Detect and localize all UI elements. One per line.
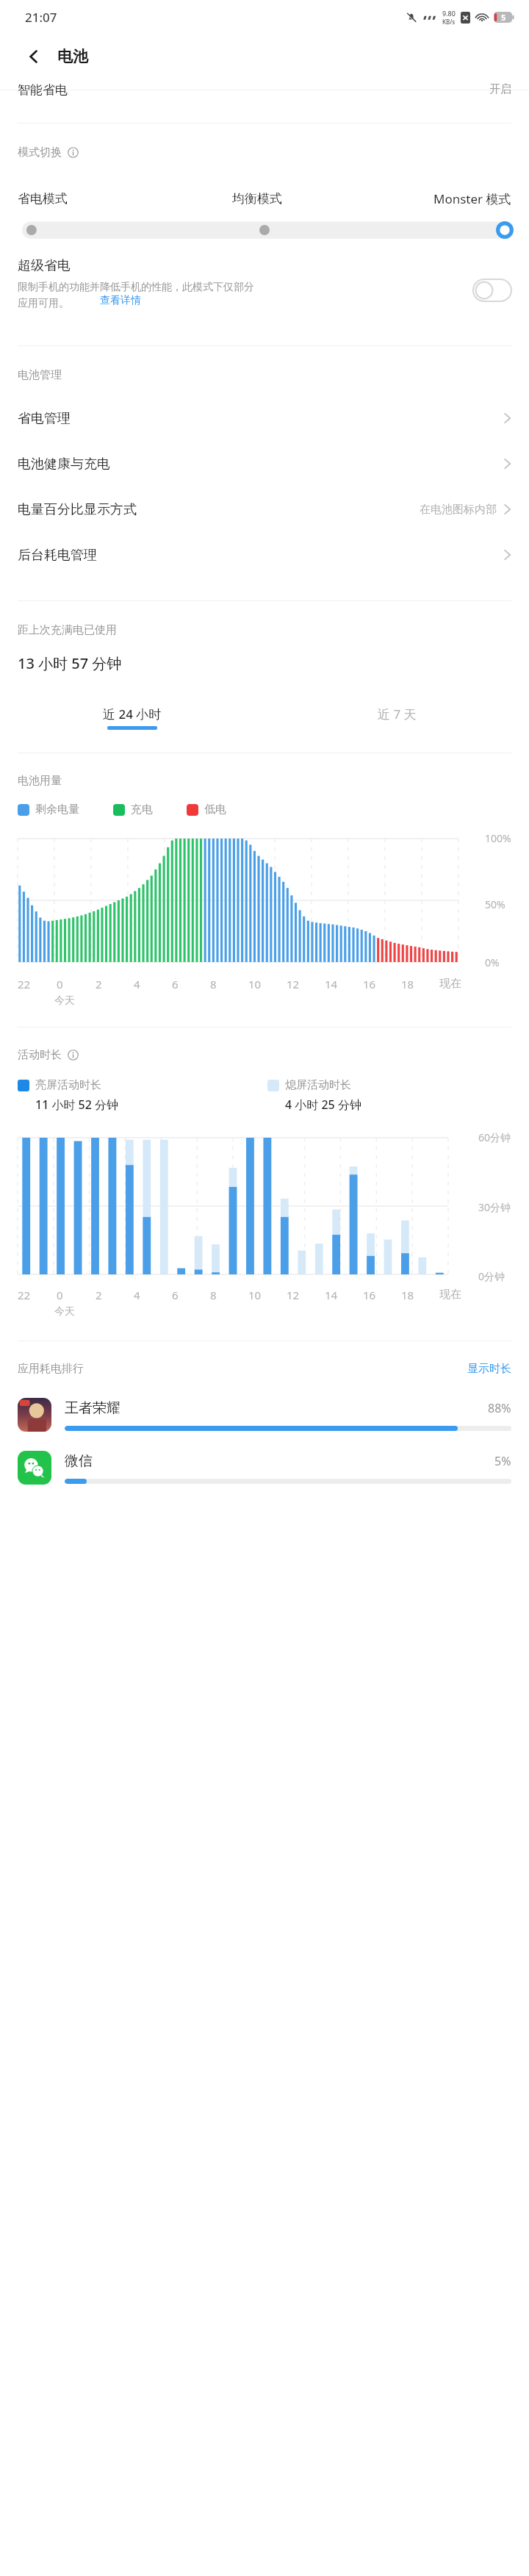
staticText: 8 <box>210 977 217 991</box>
staticText: 16 <box>363 977 376 991</box>
button[interactable]: 智能省电 <box>0 90 529 103</box>
staticText: 12 <box>287 1288 300 1302</box>
staticText: 22 <box>18 977 31 991</box>
staticText: 60分钟 <box>478 1130 511 1144</box>
staticText: 4 <box>134 977 140 991</box>
staticText: 6 <box>172 1288 179 1302</box>
staticText: 88% <box>488 1400 511 1416</box>
staticText: 后台耗电管理 <box>18 547 97 564</box>
staticText: 电量百分比显示方式 <box>18 501 137 518</box>
staticText: 12 <box>287 977 300 991</box>
staticText: 4 小时 25 分钟 <box>285 1097 361 1113</box>
staticText: 模式切换 <box>18 146 62 159</box>
button[interactable]: 王者荣耀 <box>0 1398 529 1432</box>
staticText: 11 小时 52 分钟 <box>35 1097 119 1113</box>
button[interactable]: Monster 模式 <box>337 190 511 207</box>
button[interactable]: 均衡模式 <box>177 191 337 207</box>
staticText: 16 <box>363 1288 376 1302</box>
staticText: 限制手机的功能并降低手机的性能，此模式下仅部分 应用可用。 <box>18 281 254 309</box>
staticText: 应用耗电排行 <box>18 1362 84 1376</box>
staticText: 开启 <box>489 82 511 96</box>
staticText: 9.80 <box>442 9 456 18</box>
staticText: 今天 <box>54 1305 75 1319</box>
staticText: 亮屏活动时长 <box>35 1078 101 1092</box>
button[interactable]: 微信 <box>0 1451 529 1485</box>
staticText: 均衡模式 <box>232 191 282 207</box>
staticText: 现在 <box>439 977 461 991</box>
staticText: 22 <box>18 1288 31 1302</box>
staticText: 电池用量 <box>18 774 62 788</box>
button[interactable]: 电池健康与充电 <box>0 441 529 487</box>
button[interactable]: 后台耗电管理 <box>0 532 529 578</box>
button[interactable]: Back <box>18 40 50 73</box>
staticText: 30分钟 <box>478 1200 511 1214</box>
staticText: 智能省电 <box>18 82 68 96</box>
button[interactable]: 超级省电 <box>0 254 529 326</box>
staticText: 2 <box>96 1288 102 1302</box>
staticText: 剩余电量 <box>35 803 79 817</box>
staticText: 活动时长 <box>18 1048 62 1062</box>
button[interactable]: 近 24 小时 <box>0 695 264 739</box>
staticText: 电池管理 <box>18 368 62 382</box>
button[interactable]: 省电管理 <box>0 395 529 441</box>
staticText: 今天 <box>54 994 75 1008</box>
staticText: 0 <box>57 977 63 991</box>
staticText: 近 7 天 <box>378 706 417 722</box>
staticText: 距上次充满电已使用 <box>18 623 117 637</box>
button[interactable]: 省电模式 <box>18 191 177 207</box>
staticText: 现在 <box>439 1288 461 1302</box>
button[interactable]: Performance mode slider <box>22 219 507 238</box>
button[interactable]: 近 7 天 <box>264 695 529 739</box>
staticText: KB/s <box>442 18 456 26</box>
staticText: 近 24 小时 <box>103 706 162 722</box>
staticText: 电池 <box>57 47 88 66</box>
staticText: 2 <box>96 977 102 991</box>
staticText: 100% <box>485 831 511 845</box>
staticText: 8 <box>210 1288 217 1302</box>
staticText: 0% <box>485 955 500 969</box>
staticText: 10 <box>248 1288 262 1302</box>
staticText: 0分钟 <box>478 1269 505 1283</box>
button[interactable]: 电量百分比显示方式 <box>0 487 529 532</box>
staticText: 王者荣耀 <box>65 1399 120 1417</box>
staticText: 18 <box>401 977 414 991</box>
staticText: 在电池图标内部 <box>420 503 497 517</box>
staticText: 熄屏活动时长 <box>285 1078 351 1092</box>
button[interactable]: 显示时长 <box>467 1362 511 1376</box>
staticText: 低电 <box>204 803 226 817</box>
staticText: 13 小时 57 分钟 <box>18 653 122 673</box>
staticText: 电池健康与充电 <box>18 456 110 473</box>
staticText: 10 <box>248 977 262 991</box>
button[interactable]: Super power saving toggle <box>473 279 511 301</box>
staticText: 14 <box>325 977 338 991</box>
staticText: 14 <box>325 1288 338 1302</box>
staticText: 50% <box>485 897 505 911</box>
staticText: 充电 <box>131 803 153 817</box>
staticText: 21:07 <box>25 9 57 26</box>
staticText: 超级省电 <box>18 257 71 274</box>
staticText: 4 <box>134 1288 140 1302</box>
staticText: 省电模式 <box>18 191 68 207</box>
staticText: 0 <box>57 1288 63 1302</box>
staticText: 5 <box>501 12 506 23</box>
staticText: 微信 <box>65 1452 93 1470</box>
staticText: 18 <box>401 1288 414 1302</box>
button[interactable]: 查看详情 <box>100 294 141 307</box>
staticText: 5% <box>494 1453 511 1469</box>
staticText: 6 <box>172 977 179 991</box>
staticText: 显示时长 <box>467 1362 511 1376</box>
staticText: Monster 模式 <box>433 190 511 207</box>
staticText: 省电管理 <box>18 410 71 427</box>
